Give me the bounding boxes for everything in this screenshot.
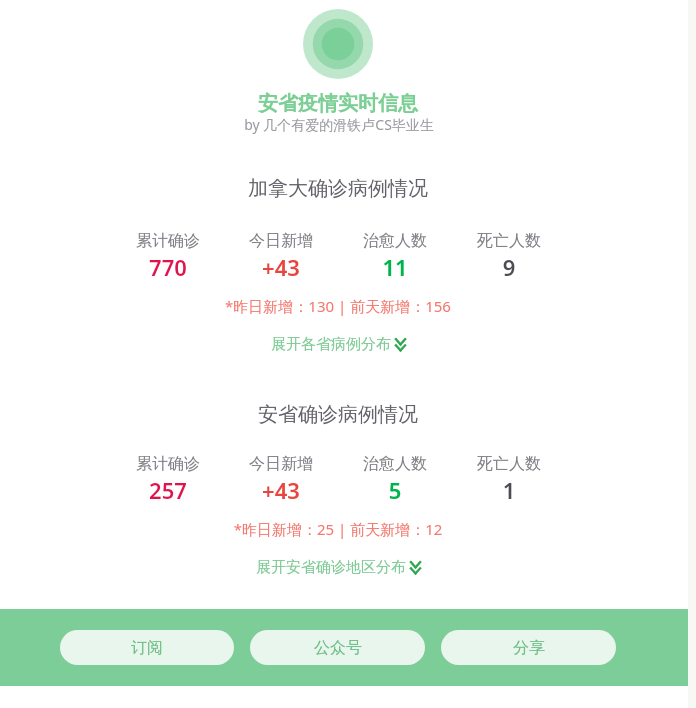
staticText: *昨日新增：130 | 前天新增：156: [0, 296, 676, 316]
staticText: 公众号: [314, 638, 362, 658]
staticText: 分享: [513, 638, 545, 658]
staticText: 累计确诊: [0, 231, 336, 251]
staticText: 9: [322, 252, 696, 282]
staticText: 11: [94, 252, 696, 282]
staticText: 1: [322, 475, 696, 505]
staticText: 今日新增: [0, 231, 562, 251]
staticText: 今日新增: [0, 454, 562, 474]
staticText: 治愈人数: [94, 454, 696, 474]
staticText: 770: [0, 252, 336, 282]
button[interactable]: 公众号: [250, 630, 425, 665]
staticText: 治愈人数: [94, 231, 696, 251]
staticText: 展开安省确诊地区分布: [256, 558, 406, 577]
button[interactable]: 订阅: [60, 630, 234, 665]
staticText: 加拿大确诊病例情况: [0, 176, 676, 201]
button[interactable]: 分享: [441, 630, 616, 665]
staticText: +43: [0, 475, 562, 505]
staticText: 展开各省病例分布: [271, 335, 391, 354]
staticText: 死亡人数: [322, 231, 696, 251]
button[interactable]: 展开安省确诊地区分布: [256, 558, 421, 577]
staticText: +43: [0, 252, 562, 282]
staticText: 死亡人数: [322, 454, 696, 474]
other: 展开: [410, 561, 421, 575]
staticText: 5: [94, 475, 696, 505]
staticText: 订阅: [131, 638, 163, 658]
staticText: 安省疫情实时信息: [0, 91, 676, 116]
staticText: by 几个有爱的滑铁卢CS毕业生: [0, 115, 678, 134]
staticText: 257: [0, 475, 336, 505]
button[interactable]: 展开各省病例分布: [271, 335, 406, 354]
staticText: 累计确诊: [0, 454, 336, 474]
staticText: 安省确诊病例情况: [0, 402, 676, 427]
other: 展开: [395, 338, 406, 352]
staticText: *昨日新增：25 | 前天新增：12: [0, 519, 676, 539]
